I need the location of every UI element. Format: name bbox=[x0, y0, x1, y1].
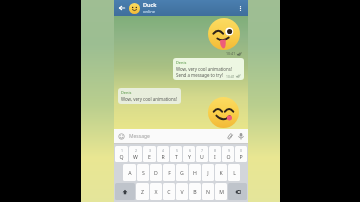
staticText: T bbox=[175, 153, 178, 160]
staticText: L bbox=[233, 169, 236, 176]
staticText: Y bbox=[188, 153, 191, 160]
staticText: 6 bbox=[189, 149, 191, 153]
button[interactable]: N bbox=[202, 183, 214, 200]
button[interactable]: S bbox=[137, 164, 149, 181]
button[interactable]: Attach bbox=[225, 131, 235, 141]
staticText: U bbox=[200, 153, 204, 160]
button[interactable]: Duck bbox=[129, 0, 235, 16]
staticText: 10:41 bbox=[226, 74, 235, 78]
button[interactable]: 1 bbox=[115, 146, 128, 162]
button[interactable]: 2 bbox=[129, 146, 142, 162]
staticText: G bbox=[180, 169, 184, 176]
staticText: V bbox=[180, 188, 184, 195]
button[interactable]: 7 bbox=[196, 146, 208, 162]
staticText: Message bbox=[129, 133, 225, 140]
button[interactable]: Voice message bbox=[236, 131, 246, 141]
staticText: I bbox=[214, 153, 216, 160]
staticText: C bbox=[167, 188, 171, 195]
staticText: Z bbox=[141, 188, 144, 195]
staticText: 4 bbox=[162, 149, 164, 153]
staticText: W bbox=[133, 153, 138, 160]
button[interactable]: C bbox=[163, 183, 175, 200]
staticText: S bbox=[142, 169, 145, 176]
button[interactable]: B bbox=[189, 183, 201, 200]
button[interactable]: More options bbox=[235, 3, 245, 13]
button[interactable]: M bbox=[215, 183, 227, 200]
staticText: R bbox=[161, 153, 165, 160]
staticText: O bbox=[226, 153, 231, 160]
button[interactable]: 4 bbox=[157, 146, 169, 162]
staticText: 2 bbox=[135, 149, 137, 153]
button[interactable]: J bbox=[202, 164, 214, 181]
staticText: K bbox=[219, 169, 223, 176]
staticText: 0 bbox=[240, 149, 242, 153]
staticText: 1 bbox=[121, 149, 123, 153]
staticText: 9 bbox=[228, 149, 230, 153]
staticText: Wow, very cool animations! bbox=[176, 66, 233, 72]
button[interactable]: Denis bbox=[173, 58, 244, 80]
button[interactable]: X bbox=[150, 183, 162, 200]
button[interactable]: 6 bbox=[183, 146, 195, 162]
button[interactable]: H bbox=[189, 164, 201, 181]
staticText: 7 bbox=[201, 149, 203, 153]
button[interactable]: 5 bbox=[170, 146, 182, 162]
staticText: F bbox=[168, 169, 171, 176]
staticText: Send a message to try! bbox=[176, 72, 223, 78]
button[interactable]: 8 bbox=[209, 146, 221, 162]
staticText: H bbox=[193, 169, 197, 176]
button[interactable]: Z bbox=[136, 183, 149, 200]
button[interactable]: A bbox=[123, 164, 136, 181]
staticText: M bbox=[219, 188, 224, 195]
staticText: online bbox=[143, 9, 156, 15]
button[interactable]: V bbox=[176, 183, 188, 200]
button[interactable]: Denis bbox=[118, 88, 181, 104]
staticText: Q bbox=[119, 153, 124, 160]
staticText: 10:41 bbox=[226, 51, 236, 56]
staticText: B bbox=[193, 188, 197, 195]
button[interactable]: Back bbox=[117, 3, 127, 13]
staticText: A bbox=[128, 169, 132, 176]
button[interactable]: G bbox=[176, 164, 188, 181]
staticText: P bbox=[239, 153, 243, 160]
button[interactable]: Emoji bbox=[117, 132, 126, 141]
staticText: Duck bbox=[143, 1, 157, 9]
button[interactable]: Backspace bbox=[228, 183, 247, 200]
button[interactable]: F bbox=[163, 164, 175, 181]
staticText: D bbox=[154, 169, 158, 176]
staticText: X bbox=[154, 188, 158, 195]
staticText: 3 bbox=[149, 149, 151, 153]
button[interactable]: Emoji bbox=[114, 129, 248, 143]
staticText: 8 bbox=[214, 149, 216, 153]
staticText: N bbox=[206, 188, 210, 195]
staticText: Denis bbox=[176, 60, 187, 65]
button[interactable]: K bbox=[215, 164, 227, 181]
staticText: 5 bbox=[176, 149, 178, 153]
button[interactable]: 3 bbox=[143, 146, 156, 162]
button[interactable]: Shift bbox=[115, 183, 135, 200]
button[interactable]: L bbox=[228, 164, 240, 181]
button[interactable]: 0 bbox=[235, 146, 247, 162]
button[interactable]: D bbox=[150, 164, 162, 181]
button[interactable]: 9 bbox=[222, 146, 234, 162]
staticText: J bbox=[207, 169, 209, 176]
staticText: Wow, very cool animations! bbox=[121, 96, 178, 102]
staticText: E bbox=[148, 153, 151, 160]
staticText: Denis bbox=[121, 90, 132, 95]
